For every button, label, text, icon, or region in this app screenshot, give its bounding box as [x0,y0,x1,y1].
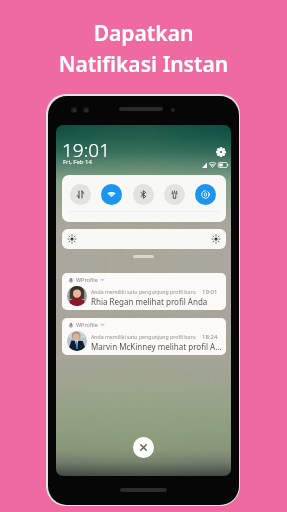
staticText: Marvin McKinney melihat profil A... [91,341,222,352]
staticText: 18:24 [202,333,218,341]
button[interactable]: Brightness [62,229,226,249]
button[interactable]: Settings [216,147,226,157]
button[interactable]: Bluetooth [133,184,154,205]
staticText: Rhia Regan melihat profil Anda [91,296,208,307]
button[interactable]: Close [133,437,154,458]
button[interactable]: Auto rotate [195,184,216,205]
staticText: Anda memiliki satu pengunjung profil bar… [91,333,196,340]
button[interactable]: Flashlight [164,184,185,205]
staticText: WProfile [76,321,98,328]
staticText: Fri, Feb 14 [63,158,92,166]
staticText: 19:01 [62,137,111,163]
button[interactable]: Wi-Fi [101,184,122,205]
button[interactable]: WProfile [62,318,226,355]
button[interactable]: Mobile data [70,184,91,205]
button[interactable]: WProfile [62,273,226,310]
staticText: Dapatkan Natifikasi Instan [0,19,287,78]
staticText: WProfile [76,276,98,283]
staticText: Anda memiliki satu pengunjung profil bar… [91,288,196,295]
staticText: 19:01 [202,288,218,296]
